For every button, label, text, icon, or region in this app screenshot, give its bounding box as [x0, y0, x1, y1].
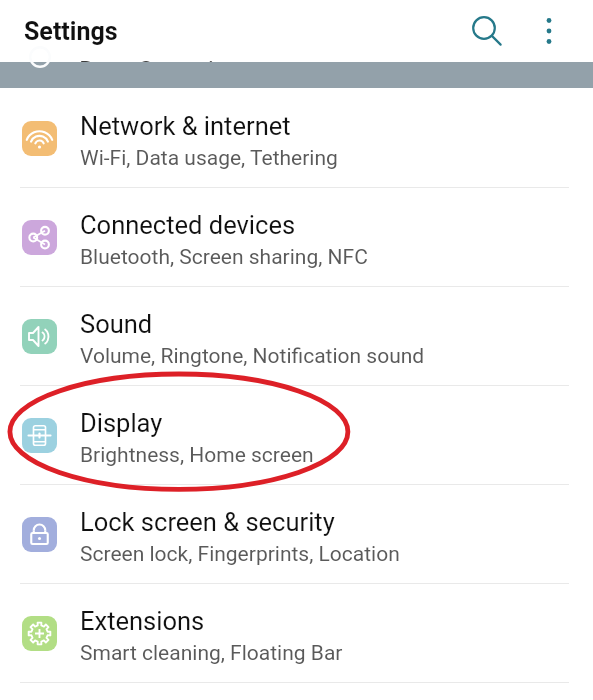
staticText: Network & internet	[80, 111, 291, 141]
button[interactable]: Sound	[0, 287, 593, 386]
staticText: Data Saver is on	[79, 56, 262, 86]
staticText: Brightness, Home screen	[80, 443, 314, 468]
staticText: Lock screen & security	[80, 507, 335, 537]
staticText: Screen lock, Fingerprints, Location	[80, 542, 400, 567]
staticText: Smart cleaning, Floating Bar	[80, 641, 343, 666]
button[interactable]: Display	[0, 386, 593, 485]
button[interactable]: More options	[527, 9, 571, 53]
staticText: Connected devices	[80, 210, 296, 240]
staticText: Settings	[24, 17, 118, 46]
button[interactable]: Lock screen & security	[0, 485, 593, 584]
button[interactable]: Connected devices	[0, 188, 593, 287]
button[interactable]: Network & internet	[0, 89, 593, 188]
staticText: Bluetooth, Screen sharing, NFC	[80, 245, 368, 270]
staticText: Volume, Ringtone, Notification sound	[80, 344, 425, 369]
staticText: Extensions	[80, 606, 205, 636]
button[interactable]: Search	[462, 4, 516, 58]
staticText: Wi-Fi, Data usage, Tethering	[80, 146, 338, 171]
staticText: Display	[80, 408, 163, 438]
button[interactable]: Extensions	[0, 584, 593, 683]
staticText: Sound	[80, 309, 153, 339]
